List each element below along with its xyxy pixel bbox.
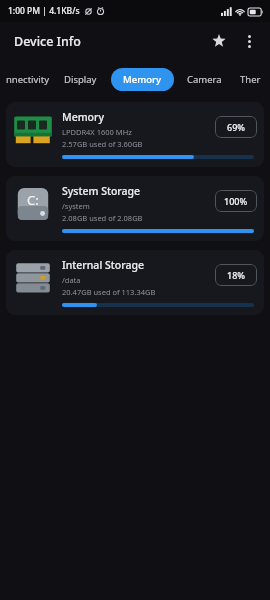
staticText: Thermal bbox=[240, 73, 268, 86]
staticText: C: bbox=[27, 191, 39, 209]
staticText: 20.47GB used of 113.34GB bbox=[62, 287, 156, 297]
button[interactable]: nnectivity bbox=[4, 68, 52, 91]
staticText: 1:00 PM | 4.1KB/s bbox=[8, 5, 80, 17]
button[interactable]: Thermal bbox=[238, 68, 270, 91]
staticText: System Storage bbox=[62, 184, 141, 198]
button[interactable]: Memory bbox=[111, 68, 174, 91]
button[interactable]: Memory bbox=[6, 102, 264, 167]
staticText: /data bbox=[62, 275, 81, 285]
button[interactable]: C: bbox=[6, 176, 264, 241]
staticText: /system bbox=[62, 201, 90, 211]
staticText: Camera bbox=[187, 73, 222, 86]
button[interactable]: Internal Storage bbox=[6, 250, 264, 315]
staticText: Memory bbox=[123, 73, 162, 86]
button[interactable]: Display bbox=[62, 68, 99, 91]
staticText: 2.08GB used of 2.08GB bbox=[62, 213, 143, 223]
staticText: 18% bbox=[227, 269, 245, 281]
staticText: 2.57GB used of 3.60GB bbox=[62, 139, 143, 149]
staticText: 100% bbox=[224, 195, 248, 207]
staticText: Internal Storage bbox=[62, 258, 144, 272]
staticText: Device Info bbox=[14, 33, 81, 50]
staticText: Display bbox=[64, 73, 97, 86]
button[interactable]: Favorite bbox=[204, 26, 234, 56]
staticText: LPDDR4X 1600 MHz bbox=[62, 127, 132, 137]
staticText: 69% bbox=[227, 121, 245, 133]
staticText: nnectivity bbox=[6, 73, 50, 86]
staticText: Memory bbox=[62, 110, 105, 124]
button[interactable]: More options bbox=[234, 26, 264, 56]
button[interactable]: Camera bbox=[185, 68, 224, 91]
